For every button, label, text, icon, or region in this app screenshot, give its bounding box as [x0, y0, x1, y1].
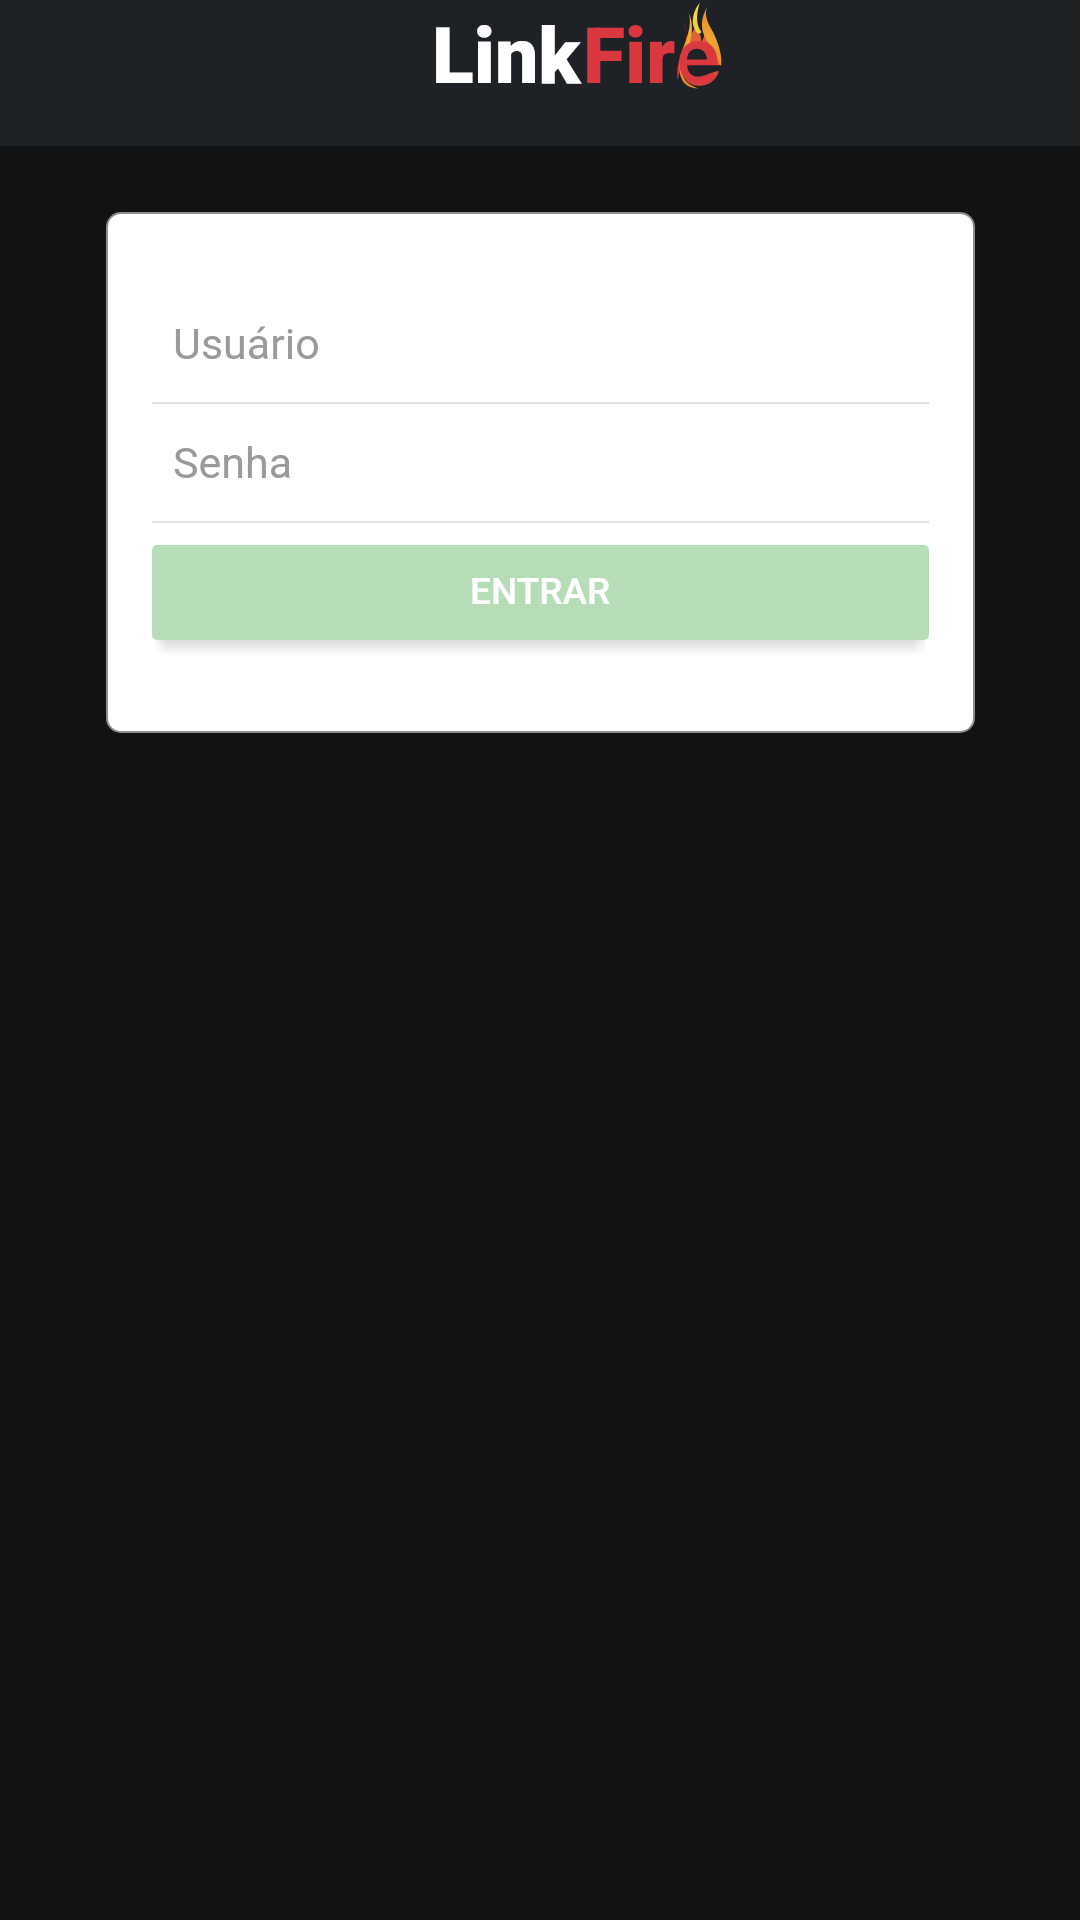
button[interactable]: ENTRAR: [152, 545, 929, 640]
staticText: ENTRAR: [470, 570, 611, 613]
staticText: Usuário: [173, 319, 320, 369]
staticText: Link: [432, 12, 581, 102]
staticText: Senha: [173, 438, 293, 488]
staticText: Fir: [583, 12, 676, 102]
button[interactable]: Senha: [152, 404, 929, 523]
staticText: e: [677, 12, 719, 102]
button[interactable]: Usuário: [152, 290, 929, 404]
other: LinkFire: [0, 0, 1080, 146]
